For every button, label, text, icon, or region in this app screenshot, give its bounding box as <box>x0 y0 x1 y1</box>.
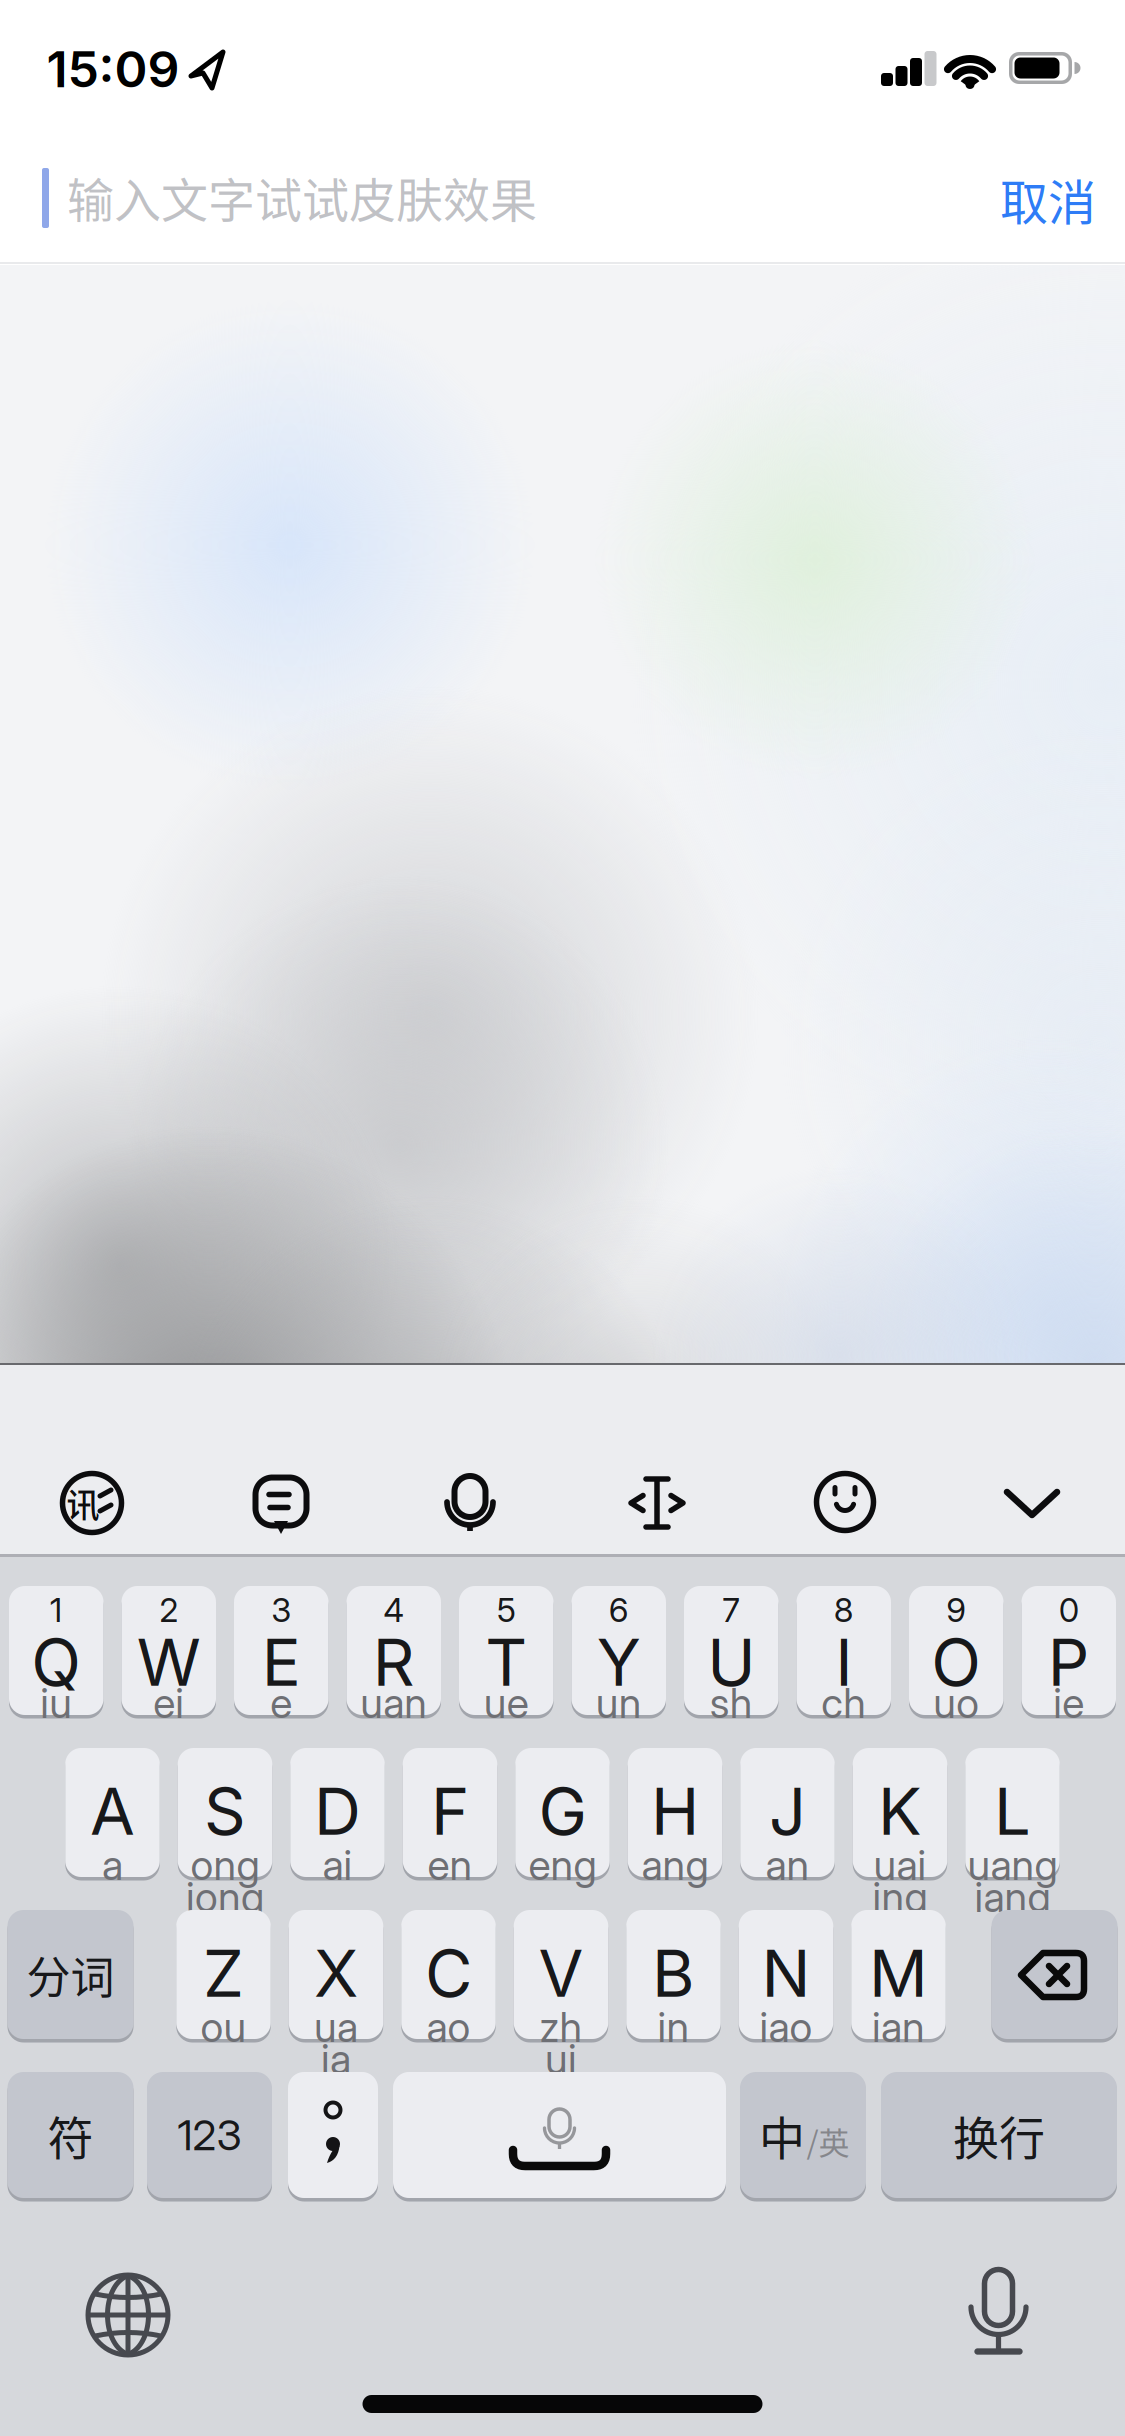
staticText: ie <box>1053 1678 1084 1728</box>
button[interactable]: B <box>626 1910 721 2039</box>
staticText: I <box>835 1623 852 1701</box>
button[interactable]: 6 <box>571 1586 666 1715</box>
staticText: iang <box>974 1872 1050 1922</box>
staticText: ai <box>322 1840 352 1890</box>
staticText: 符 <box>47 2102 93 2168</box>
button[interactable]: 取消 <box>1000 164 1096 234</box>
button[interactable]: 4 <box>346 1586 441 1715</box>
staticText: ch <box>821 1678 866 1728</box>
staticText: 15:09 <box>46 39 179 99</box>
button[interactable]: 2 <box>121 1586 216 1715</box>
button[interactable]: D <box>290 1748 385 1877</box>
button[interactable]: K <box>853 1748 947 1877</box>
button[interactable]: Segment words <box>7 1910 133 2039</box>
button[interactable]: V <box>514 1910 608 2039</box>
staticText: ui <box>545 2034 577 2084</box>
staticText: V <box>538 1934 583 2012</box>
staticText: ue <box>484 1678 529 1728</box>
button[interactable]: Move cursor <box>622 1468 692 1538</box>
staticText: Y <box>597 1623 641 1701</box>
staticText: 4 <box>383 1590 404 1630</box>
staticText: sh <box>710 1678 753 1728</box>
staticText: ua <box>314 2002 358 2052</box>
staticText: D <box>314 1772 361 1850</box>
button[interactable]: L <box>965 1748 1060 1877</box>
staticText: e <box>270 1678 292 1728</box>
button[interactable]: H <box>628 1748 722 1877</box>
button[interactable]: Punctuation <box>288 2072 378 2198</box>
staticText: un <box>596 1678 642 1728</box>
button[interactable]: 1 <box>9 1586 103 1715</box>
button[interactable]: 7 <box>684 1586 778 1715</box>
staticText: E <box>262 1623 301 1701</box>
staticText: zh <box>539 2002 582 2052</box>
button[interactable]: Next keyboard <box>78 2265 178 2365</box>
button[interactable]: 5 <box>459 1586 553 1715</box>
staticText: iong <box>186 1872 264 1922</box>
button[interactable]: S <box>178 1748 272 1877</box>
staticText: L <box>994 1772 1031 1850</box>
button[interactable]: Dismiss keyboard <box>997 1468 1067 1538</box>
staticText: 分词 <box>26 1943 114 2006</box>
staticText: W <box>137 1623 201 1701</box>
staticText: /英 <box>806 2119 849 2163</box>
staticText: A <box>90 1772 135 1850</box>
button[interactable]: N <box>739 1910 833 2039</box>
button[interactable]: C <box>401 1910 496 2039</box>
button[interactable]: Space <box>393 2072 726 2198</box>
button[interactable]: J <box>740 1748 835 1877</box>
staticText: a <box>102 1840 123 1890</box>
button[interactable]: 8 <box>796 1586 891 1715</box>
button[interactable]: Delete <box>991 1910 1117 2039</box>
button[interactable]: 3 <box>234 1586 328 1715</box>
staticText: G <box>538 1772 586 1850</box>
staticText: 7 <box>722 1590 740 1630</box>
button[interactable]: G <box>515 1748 610 1877</box>
button[interactable]: Chinese / English <box>740 2072 866 2198</box>
staticText: Q <box>31 1623 81 1701</box>
staticText: 6 <box>609 1590 629 1630</box>
staticText: N <box>761 1934 810 2012</box>
staticText: 5 <box>497 1590 516 1630</box>
staticText: an <box>765 1840 809 1890</box>
button[interactable]: 9 <box>909 1586 1003 1715</box>
button[interactable]: X <box>289 1910 383 2039</box>
button[interactable]: Emoji <box>810 1468 880 1538</box>
staticText: ei <box>153 1678 184 1728</box>
button[interactable]: Z <box>176 1910 271 2039</box>
staticText: en <box>427 1840 472 1890</box>
staticText: 3 <box>271 1590 291 1630</box>
button[interactable]: Symbols <box>7 2072 133 2198</box>
staticText: 2 <box>159 1590 178 1630</box>
button[interactable]: Dictation <box>435 1468 505 1538</box>
staticText: C <box>425 1934 472 2012</box>
button[interactable]: M <box>851 1910 946 2039</box>
staticText: 换行 <box>953 2102 1045 2168</box>
staticText: in <box>657 2002 689 2052</box>
staticText: 1 <box>50 1590 63 1630</box>
staticText: U <box>707 1623 755 1701</box>
staticText: O <box>931 1623 981 1701</box>
staticText: S <box>204 1772 246 1850</box>
staticText: Z <box>203 1934 244 2012</box>
staticText: F <box>431 1772 469 1850</box>
button[interactable]: Numbers <box>147 2072 272 2198</box>
staticText: uai <box>873 1840 926 1890</box>
button[interactable]: iFlytek menu <box>57 1468 127 1538</box>
button[interactable]: Voice input <box>948 2263 1048 2363</box>
staticText: uo <box>933 1678 979 1728</box>
button[interactable]: F <box>403 1748 497 1877</box>
staticText: J <box>769 1772 806 1850</box>
button[interactable]: 0 <box>1021 1586 1116 1715</box>
staticText: X <box>314 1934 358 2012</box>
staticText: 中 <box>759 2102 805 2168</box>
staticText: ian <box>872 2002 925 2052</box>
button[interactable]: Return <box>881 2072 1117 2198</box>
staticText: M <box>869 1934 928 2012</box>
staticText: 9 <box>946 1590 966 1630</box>
button[interactable]: Phrases <box>246 1468 316 1538</box>
staticText: 讯 <box>66 1479 99 1527</box>
button[interactable]: A <box>65 1748 160 1877</box>
staticText: P <box>1048 1623 1090 1701</box>
staticText: R <box>373 1623 415 1701</box>
